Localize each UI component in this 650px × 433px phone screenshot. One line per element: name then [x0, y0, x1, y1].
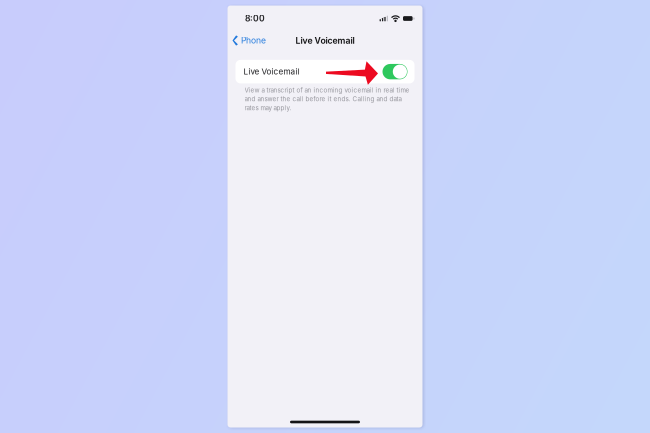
button[interactable]: Live Voicemail, on — [382, 64, 407, 79]
button[interactable]: Live Voicemail — [235, 60, 414, 83]
button[interactable]: Phone — [230, 32, 268, 49]
staticText: Phone — [241, 35, 266, 46]
staticText: 8:00 — [245, 13, 265, 24]
staticText: Live Voicemail — [295, 35, 354, 46]
staticText: View a transcript of an incoming voicema… — [244, 86, 409, 112]
staticText: Live Voicemail — [243, 67, 299, 76]
